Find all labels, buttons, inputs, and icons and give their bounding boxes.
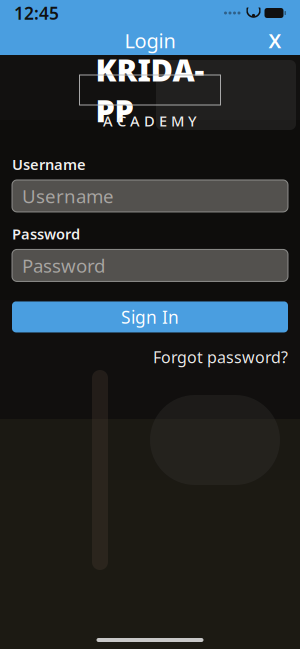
staticText: Forgot password? xyxy=(153,346,288,368)
staticText: Username xyxy=(22,184,114,208)
button[interactable]: Forgot password? xyxy=(153,342,288,372)
staticText: KRIDAPP xyxy=(95,49,204,131)
staticText: 12:45 xyxy=(14,1,59,24)
staticText: Password xyxy=(12,224,80,243)
staticText: Login xyxy=(124,27,175,54)
staticText: Password xyxy=(22,253,105,278)
button[interactable]: Close xyxy=(258,26,292,55)
staticText: Sign In xyxy=(121,305,179,328)
button[interactable]: Password xyxy=(12,249,288,281)
staticText: A C A D E M Y xyxy=(103,111,197,130)
button[interactable]: Sign In xyxy=(12,301,288,332)
button[interactable]: Username xyxy=(12,180,288,212)
staticText: X xyxy=(268,27,281,54)
staticText: Username xyxy=(12,154,86,174)
